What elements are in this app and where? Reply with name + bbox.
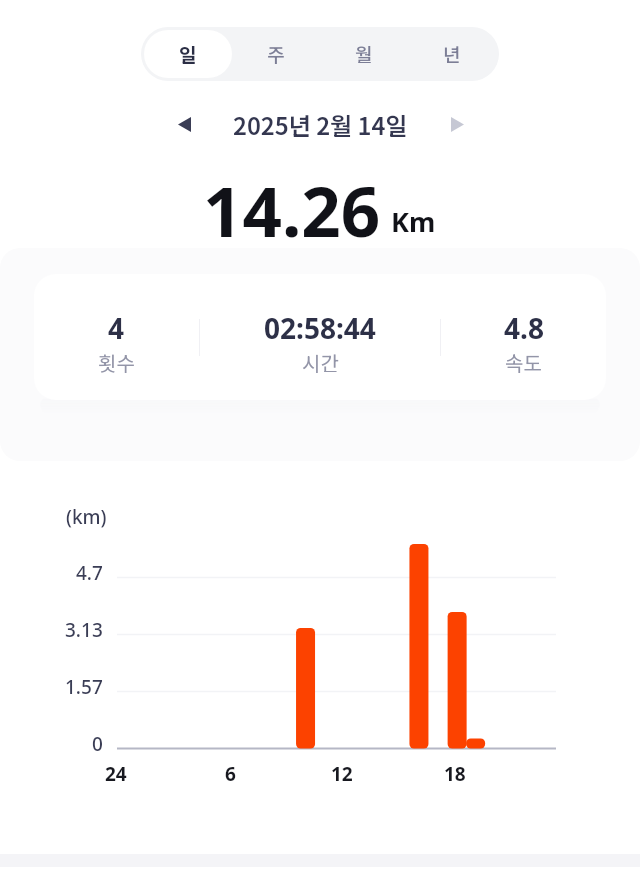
- button[interactable]: 일: [144, 30, 232, 78]
- staticText: 1.57: [65, 674, 103, 700]
- staticText: 년: [443, 40, 461, 68]
- staticText: 월: [355, 40, 373, 68]
- button[interactable]: 02:58:44: [200, 274, 440, 400]
- staticText: 속도: [505, 348, 542, 377]
- staticText: 12: [331, 761, 353, 787]
- staticText: 4.7: [76, 560, 103, 586]
- staticText: Km: [391, 203, 436, 240]
- button[interactable]: 년: [408, 30, 496, 78]
- button[interactable]: Next day: [435, 102, 479, 146]
- staticText: 24: [105, 761, 127, 787]
- staticText: 02:58:44: [264, 309, 376, 347]
- staticText: 주: [267, 40, 285, 68]
- button[interactable]: 4: [34, 274, 199, 400]
- staticText: (km): [66, 504, 107, 530]
- staticText: 4: [108, 309, 125, 347]
- staticText: 시간: [302, 348, 339, 377]
- staticText: 0: [92, 731, 103, 757]
- staticText: 14.26: [203, 163, 381, 253]
- button[interactable]: Previous day: [162, 102, 206, 146]
- staticText: 4.8: [504, 309, 544, 347]
- button[interactable]: 4.8: [441, 274, 606, 400]
- staticText: 6: [225, 761, 236, 787]
- button[interactable]: 주: [232, 30, 320, 78]
- button[interactable]: 월: [320, 30, 408, 78]
- staticText: 2025년 2월 14일: [233, 107, 408, 142]
- staticText: 3.13: [65, 617, 103, 643]
- staticText: 횟수: [98, 348, 135, 377]
- staticText: 일: [179, 40, 197, 68]
- staticText: 18: [444, 761, 466, 787]
